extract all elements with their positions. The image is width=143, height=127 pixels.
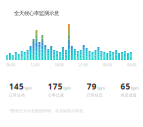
staticText: bpm bbox=[97, 85, 105, 90]
staticText: 全天候心率监测示意 bbox=[14, 10, 59, 17]
staticText: 06:00 bbox=[127, 62, 136, 67]
staticText: 145 bbox=[9, 81, 24, 92]
staticText: 日常状态 bbox=[87, 93, 103, 97]
staticText: 休息低值 bbox=[120, 93, 136, 97]
staticText: 79 bbox=[87, 81, 97, 92]
staticText: 06:00 bbox=[6, 62, 15, 67]
staticText: bpm bbox=[131, 85, 139, 90]
staticText: 正常运动 bbox=[9, 93, 25, 97]
staticText: bpm bbox=[24, 85, 32, 90]
staticText: 65 bbox=[120, 81, 130, 92]
staticText: 12:00 bbox=[30, 62, 39, 67]
staticText: 21:00 bbox=[79, 62, 88, 67]
staticText: 18:00 bbox=[54, 62, 63, 67]
staticText: bpm bbox=[63, 85, 71, 90]
staticText: 00:00 bbox=[103, 62, 112, 67]
staticText: 心率过速 bbox=[48, 93, 64, 97]
staticText: *图表仅为示意数据样例，非实际显示界面。 bbox=[9, 108, 87, 113]
staticText: 175 bbox=[48, 81, 63, 92]
